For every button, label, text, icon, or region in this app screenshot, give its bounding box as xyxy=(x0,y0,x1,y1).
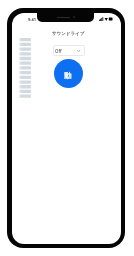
button[interactable]: Loading list xyxy=(19,38,31,101)
staticText: Off xyxy=(55,48,62,54)
staticText: 動 xyxy=(64,71,72,80)
button[interactable]: Start xyxy=(54,59,83,88)
staticText: サウンドライブ xyxy=(52,31,85,37)
staticText: 9:41 xyxy=(28,17,36,22)
button[interactable]: Off selector xyxy=(53,45,85,56)
